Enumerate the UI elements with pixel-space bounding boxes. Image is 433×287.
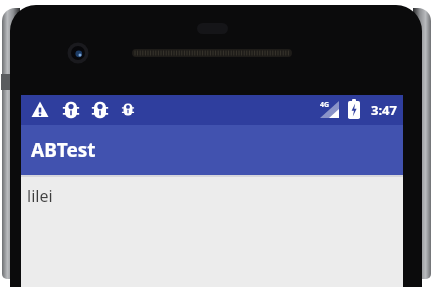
button[interactable]: ABTest (21, 125, 403, 175)
staticText: 4G (320, 100, 330, 110)
button[interactable]: lilei (27, 185, 53, 207)
staticText: ABTest (31, 137, 96, 163)
staticText: 3:47 (371, 101, 397, 119)
